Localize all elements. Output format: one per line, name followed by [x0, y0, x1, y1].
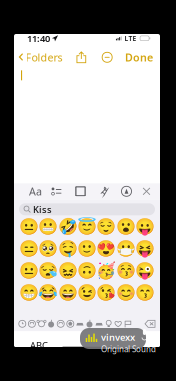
button[interactable]: 🥳 [97, 261, 116, 280]
button[interactable]: Emoji category [75, 318, 85, 329]
button[interactable]: 😚 [116, 261, 135, 280]
staticText: 😁 [19, 283, 39, 301]
staticText: vinvexx [101, 331, 135, 343]
staticText: 😐 [19, 218, 39, 236]
button[interactable]: ABC [14, 331, 48, 352]
button[interactable]: Done [125, 50, 153, 64]
button[interactable]: 😄 [58, 282, 77, 302]
button[interactable]: 🙂 [77, 239, 97, 258]
button[interactable]: Emoji category [104, 318, 113, 329]
staticText: Folders [25, 50, 62, 64]
button[interactable]: 😛 [135, 217, 154, 237]
button[interactable]: Markup [119, 183, 134, 199]
button[interactable]: 😍 [97, 239, 116, 258]
button[interactable]: Emoji category [37, 318, 46, 329]
button[interactable]: Emoji category [56, 318, 65, 329]
button[interactable]: Emoji category [46, 318, 56, 329]
staticText: 🤣 [58, 218, 78, 236]
button[interactable]: 😙 [135, 282, 154, 302]
staticText: 😖 [58, 261, 78, 280]
staticText: 😬 [38, 218, 58, 236]
button[interactable]: 😖 [58, 261, 77, 280]
button[interactable]: Checklist [49, 183, 64, 199]
staticText: 😄 [58, 283, 78, 301]
button[interactable]: Folders [18, 50, 63, 64]
button[interactable]: 😁 [19, 282, 39, 302]
staticText: ABC [30, 339, 48, 352]
button[interactable]: Emoji category [17, 318, 27, 329]
button[interactable]: Emoji category [65, 318, 75, 329]
button[interactable]: 😑 [19, 239, 39, 258]
staticText: 😊 [116, 283, 136, 301]
staticText: 😑 [19, 239, 39, 258]
button[interactable]: 😌 [97, 217, 116, 237]
staticText: 😷 [116, 239, 136, 258]
staticText: 11:40 [27, 32, 50, 44]
staticText: 😉 [77, 283, 97, 301]
button[interactable]: 😐 [19, 217, 39, 237]
staticText: 🥳 [96, 261, 116, 280]
button[interactable]: Aa [28, 183, 43, 199]
button[interactable]: 😊 [116, 282, 135, 302]
button[interactable]: Emoji category [85, 318, 94, 329]
staticText: 😪 [38, 261, 58, 280]
staticText: Kiss [33, 203, 52, 215]
button[interactable]: Emoji category [27, 318, 37, 329]
button[interactable]: Delete [143, 318, 157, 329]
staticText: 😝 [135, 239, 155, 258]
staticText: Aa [29, 184, 42, 198]
staticText: 😌 [96, 218, 116, 236]
button[interactable]: 😐 [19, 261, 39, 280]
button[interactable]: 🤤 [58, 239, 77, 258]
button[interactable]: Emoji category [94, 318, 104, 329]
button[interactable]: 😜 [135, 261, 154, 280]
button[interactable]: Table [73, 183, 88, 199]
staticText: 😇 [77, 218, 97, 236]
button[interactable]: 😬 [39, 217, 58, 237]
button[interactable]: 🥺 [39, 239, 58, 258]
staticText: LTE [124, 34, 136, 43]
staticText: 😜 [135, 261, 155, 280]
button[interactable]: 😷 [116, 239, 135, 258]
button[interactable]: 🙃 [77, 261, 97, 280]
staticText: 😂 [38, 283, 58, 301]
staticText: 🙃 [77, 261, 97, 280]
button[interactable]: 😂 [39, 282, 58, 302]
staticText: 😮 [116, 218, 136, 236]
staticText: 😐 [19, 261, 39, 280]
button[interactable]: 😪 [39, 261, 58, 280]
button[interactable]: Emoji category [113, 318, 123, 329]
staticText: Done [125, 50, 153, 64]
staticText: Original Sound [101, 344, 156, 354]
button[interactable]: Emoji category [123, 318, 133, 329]
button[interactable]: 😝 [135, 239, 154, 258]
button[interactable]: Attach [96, 183, 111, 199]
button[interactable]: 🤣 [58, 217, 77, 237]
button[interactable]: More [99, 52, 115, 62]
staticText: 😙 [135, 283, 155, 301]
button[interactable]: 😘 [97, 282, 116, 302]
button[interactable]: 😉 [77, 282, 97, 302]
button[interactable]: Close [139, 183, 154, 199]
staticText: 😛 [135, 218, 155, 236]
button[interactable]: 😇 [77, 217, 97, 237]
staticText: 🥺 [38, 239, 58, 258]
button[interactable]: Share [73, 51, 89, 63]
button[interactable]: Kiss [19, 203, 155, 215]
staticText: 🤤 [58, 239, 78, 258]
staticText: 😘 [96, 283, 116, 301]
staticText: 🙂 [77, 239, 97, 258]
staticText: 😍 [96, 239, 116, 258]
staticText: 😚 [116, 261, 136, 280]
button[interactable]: 😮 [116, 217, 135, 237]
